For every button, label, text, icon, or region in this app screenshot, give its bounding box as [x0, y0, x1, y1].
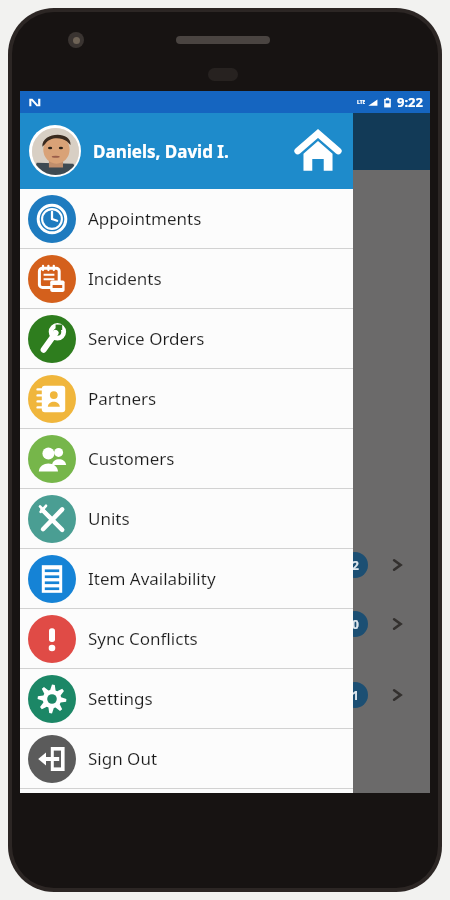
staticText: 9:22 [397, 93, 423, 111]
staticText: Daniels, David I. [93, 140, 229, 163]
staticText: LTE [357, 99, 366, 106]
staticText: Item Availability [88, 567, 216, 590]
staticText: Settings [88, 687, 153, 710]
staticText: Incidents [88, 267, 162, 290]
button[interactable]: Item Availability [20, 549, 353, 608]
button[interactable]: Home [289, 122, 347, 180]
button[interactable]: Appointments [20, 189, 353, 248]
staticText: Service Orders [88, 327, 205, 350]
button[interactable]: Incidents [20, 249, 353, 308]
button[interactable]: 1 [20, 680, 430, 710]
button[interactable]: 0 [20, 609, 430, 639]
staticText: Units [88, 507, 130, 530]
staticText: Appointments [88, 207, 202, 230]
button[interactable]: Sync Conflicts [20, 609, 353, 668]
button[interactable]: Partners [20, 369, 353, 428]
staticText: 1 [352, 687, 359, 703]
staticText: Partners [88, 387, 157, 410]
button[interactable]: Customers [20, 429, 353, 488]
button[interactable]: Settings [20, 669, 353, 728]
button[interactable]: 2 [20, 550, 430, 580]
button[interactable]: Daniels, David I. [20, 113, 353, 189]
staticText: Customers [88, 447, 175, 470]
button[interactable]: Service Orders [20, 309, 353, 368]
button[interactable]: Units [20, 489, 353, 548]
staticText: Sign Out [88, 747, 158, 770]
button[interactable]: Sign Out [20, 729, 353, 788]
staticText: 0 [352, 616, 359, 632]
staticText: Sync Conflicts [88, 627, 198, 650]
staticText: 2 [352, 557, 359, 573]
